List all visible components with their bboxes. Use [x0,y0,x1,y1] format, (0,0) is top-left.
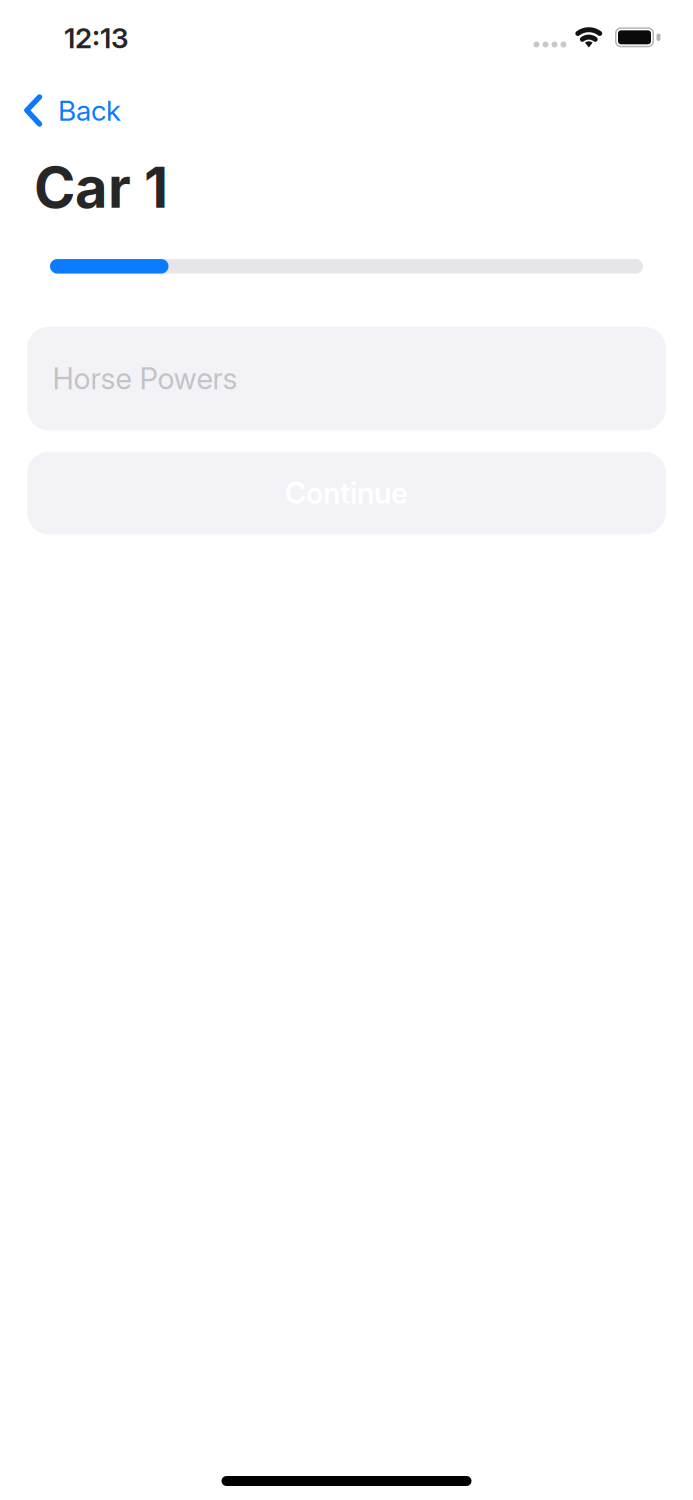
staticText: Horse Powers [52,361,237,396]
staticText: Back [58,94,121,127]
staticText: Car 1 [34,154,168,221]
button[interactable]: Back [24,94,121,127]
staticText: Continue [285,476,408,510]
button[interactable]: Horse Powers [27,327,666,430]
staticText: 12:13 [64,21,129,54]
